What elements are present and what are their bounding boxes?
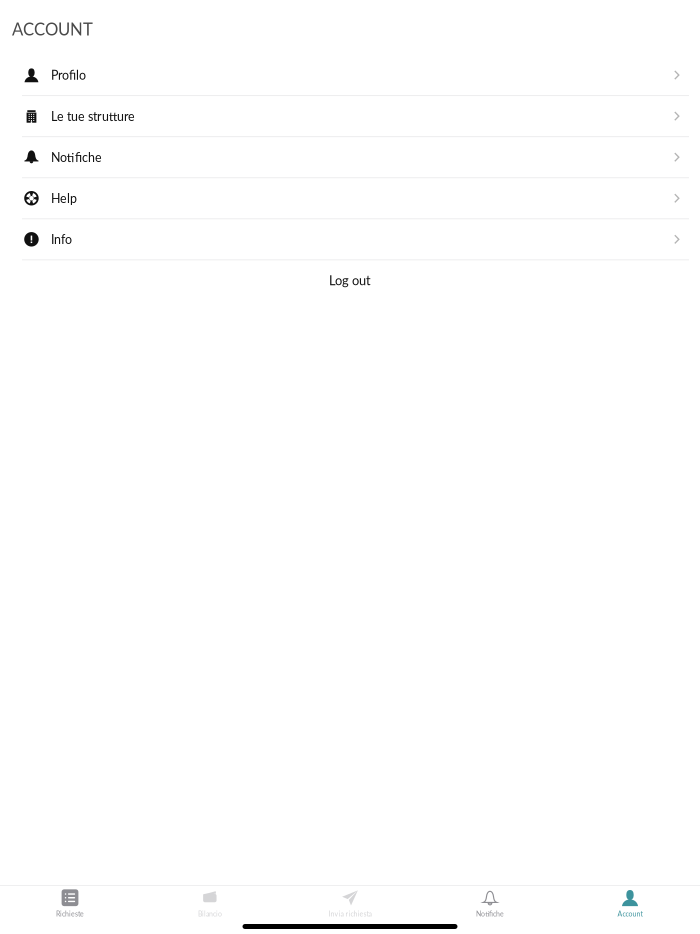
button[interactable]: Info [0,219,700,260]
staticText: Profilo [51,68,86,82]
staticText: Account [617,909,642,918]
button[interactable]: Bilancio [140,884,280,921]
staticText: Richieste [56,909,84,918]
button[interactable]: Account [560,884,700,921]
button[interactable]: Help [0,178,700,219]
staticText: Invia richiesta [328,909,371,918]
button[interactable]: Richieste [0,884,140,921]
button[interactable]: Profilo [0,55,700,96]
button[interactable]: Invia richiesta [280,884,420,921]
staticText: Info [51,232,72,247]
staticText: Help [51,191,77,206]
staticText: Le tue strutture [51,109,135,124]
staticText: Bilancio [198,909,222,918]
button[interactable]: Log out [0,260,700,300]
button[interactable]: Notifiche [0,137,700,178]
staticText: Log out [329,273,371,288]
staticText: ACCOUNT [12,19,93,39]
button[interactable]: Notifiche [420,884,560,921]
button[interactable]: Le tue strutture [0,96,700,137]
staticText: Notifiche [476,909,504,918]
staticText: Notifiche [51,150,102,165]
